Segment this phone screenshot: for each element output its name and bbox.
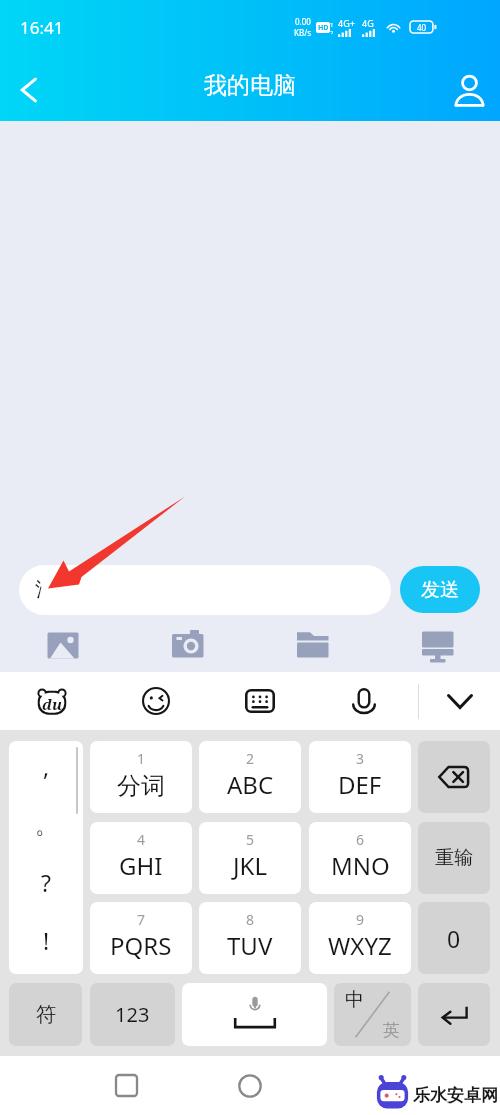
button[interactable]: 1 分词 — [90, 741, 192, 813]
staticText: ABC — [227, 768, 274, 801]
staticText: 符 — [36, 1002, 56, 1027]
button[interactable]: 氵 — [19, 565, 391, 615]
staticText: 6 — [356, 830, 365, 849]
button[interactable]: Enter — [418, 983, 490, 1046]
staticText: 。 — [35, 811, 58, 840]
button[interactable]: Back — [0, 59, 58, 121]
staticText: DEF — [338, 768, 382, 801]
staticText: 123 — [115, 1001, 150, 1028]
staticText: 3 — [356, 749, 365, 768]
button[interactable]: Profile — [438, 59, 500, 121]
staticText: 4G+ — [338, 17, 355, 29]
staticText: 16:41 — [20, 16, 64, 39]
button[interactable]: Hide keyboard — [419, 672, 500, 730]
staticText: 40 — [417, 22, 427, 33]
staticText: JKL — [233, 849, 267, 882]
staticText: ! — [43, 925, 50, 956]
button[interactable]: Baidu input — [0, 672, 104, 730]
staticText: 8 — [246, 910, 255, 929]
button[interactable]: 3 DEF — [309, 741, 411, 813]
button[interactable]: 9 WXYZ — [309, 902, 411, 974]
button[interactable]: 4 GHI — [90, 822, 192, 894]
button[interactable]: Symbols — [9, 983, 82, 1046]
staticText: 乐水安卓网 — [413, 1085, 498, 1106]
button[interactable]: 7 PQRS — [90, 902, 192, 974]
staticText: 氵 — [35, 578, 54, 602]
staticText: ? — [41, 867, 51, 898]
staticText: MNO — [331, 849, 390, 882]
button[interactable]: 5 JKL — [199, 822, 301, 894]
staticText: TUV — [227, 929, 273, 962]
staticText: 1 — [137, 749, 146, 768]
button[interactable]: Home — [208, 1056, 292, 1115]
button[interactable]: 8 TUV — [199, 902, 301, 974]
button[interactable]: Re-enter — [418, 822, 490, 894]
staticText: HD — [318, 23, 329, 33]
staticText: 英 — [383, 1020, 400, 1041]
staticText: GHI — [119, 849, 163, 882]
button[interactable]: 123 — [90, 983, 175, 1046]
button[interactable]: Keyboard layout — [208, 672, 312, 730]
button[interactable]: 发送 — [400, 566, 480, 613]
staticText: , — [43, 751, 50, 782]
staticText: 我的电脑 — [204, 71, 296, 100]
button[interactable]: Files — [263, 621, 363, 672]
button[interactable]: Camera — [138, 621, 238, 672]
staticText: 2 — [246, 749, 255, 768]
button[interactable]: Gallery — [13, 621, 113, 672]
button[interactable]: Emoji — [104, 672, 208, 730]
button[interactable]: Computer — [388, 621, 488, 672]
staticText: 1 — [330, 21, 334, 29]
staticText: 发送 — [421, 578, 459, 602]
staticText: 中 — [345, 988, 364, 1012]
staticText: 4 — [137, 830, 146, 849]
button[interactable]: Space — [182, 983, 327, 1046]
staticText: 0.00 — [295, 16, 311, 27]
staticText: 重输 — [435, 846, 473, 870]
staticText: 分词 — [117, 771, 165, 801]
button[interactable]: Delete — [418, 741, 490, 813]
staticText: 5 — [246, 830, 255, 849]
button[interactable]: Punctuation — [9, 741, 83, 974]
staticText: 0 — [447, 923, 461, 954]
staticText: du — [42, 694, 63, 714]
staticText: KB/s — [294, 27, 311, 38]
button[interactable]: 2 ABC — [199, 741, 301, 813]
button[interactable]: Chinese English toggle — [334, 983, 411, 1046]
staticText: 2 — [330, 29, 334, 34]
staticText: WXYZ — [328, 929, 392, 962]
staticText: 9 — [356, 910, 365, 929]
staticText: PQRS — [110, 929, 172, 962]
button[interactable]: 6 MNO — [309, 822, 411, 894]
staticText: 4G — [362, 17, 374, 29]
button[interactable]: 0 — [418, 902, 490, 974]
staticText: 7 — [137, 910, 146, 929]
button[interactable]: Recents — [84, 1056, 168, 1115]
button[interactable]: Voice input — [312, 672, 416, 730]
